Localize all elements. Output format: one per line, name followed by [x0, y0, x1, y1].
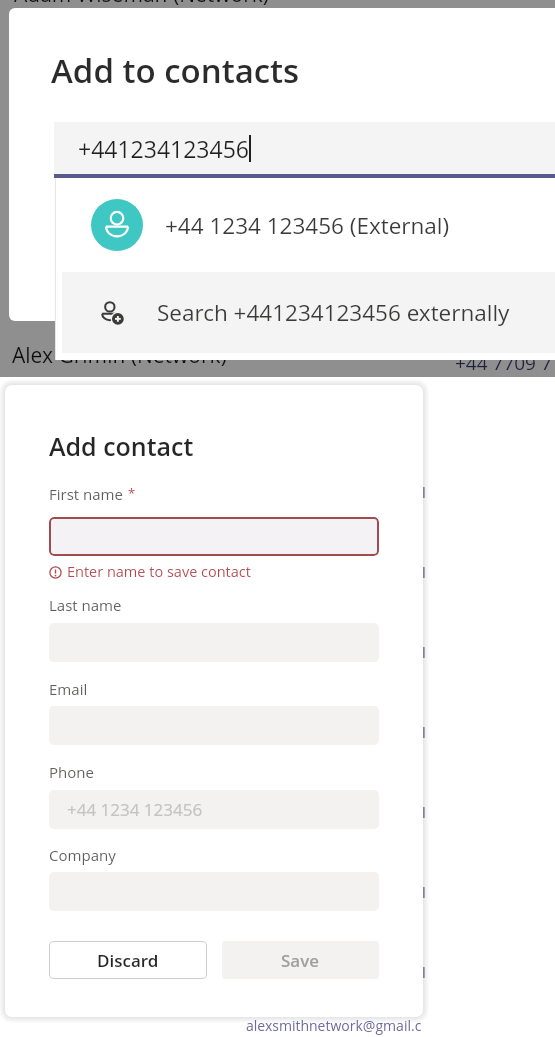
- staticText: Search +441234123456 externally: [157, 297, 510, 328]
- staticText: Adam Wiseman (Network): [14, 0, 270, 9]
- button[interactable]: [49, 517, 379, 556]
- staticText: Last name: [49, 595, 122, 615]
- staticText: +44 7709 7: [455, 350, 552, 376]
- staticText: Save: [281, 949, 320, 972]
- staticText: l: [422, 962, 426, 982]
- staticText: +441234123456: [78, 133, 249, 164]
- staticText: Add to contacts: [51, 48, 300, 93]
- staticText: Discard: [97, 949, 159, 972]
- staticText: l: [422, 482, 426, 502]
- staticText: Add contact: [49, 429, 194, 463]
- staticText: l: [422, 882, 426, 902]
- staticText: Enter name to save contact: [67, 562, 251, 582]
- staticText: l: [422, 722, 426, 742]
- button[interactable]: Discard: [49, 941, 207, 979]
- staticText: Company: [49, 845, 116, 865]
- button[interactable]: +441234123456: [54, 122, 555, 174]
- staticText: alexsmithnetwork@gmail.c: [246, 1016, 422, 1035]
- button[interactable]: +44 1234 123456: [49, 790, 379, 829]
- staticText: Alex Grimin (Network): [12, 341, 227, 370]
- staticText: +44 1234 123456: [67, 798, 203, 821]
- staticText: l: [422, 562, 426, 582]
- staticText: l: [422, 642, 426, 662]
- staticText: l: [422, 802, 426, 822]
- staticText: +44 1234 123456 (External): [165, 210, 450, 241]
- button[interactable]: Search +441234123456 externally: [62, 272, 555, 353]
- staticText: First name: [49, 484, 123, 504]
- staticText: *: [128, 484, 136, 502]
- staticText: Phone: [49, 762, 94, 782]
- staticText: Email: [49, 679, 88, 699]
- button[interactable]: +44 1234 123456 (External): [62, 185, 555, 265]
- button[interactable]: Save: [222, 941, 379, 979]
